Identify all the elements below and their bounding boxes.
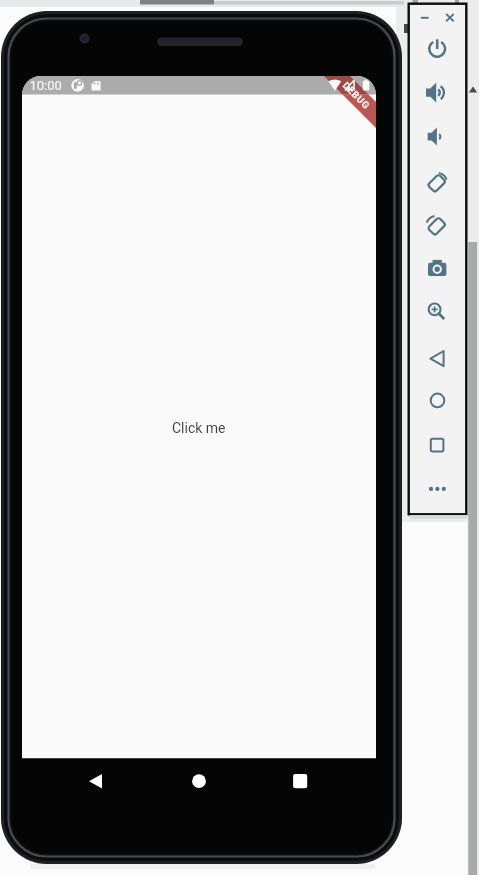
button[interactable] bbox=[423, 344, 451, 372]
button[interactable] bbox=[423, 211, 451, 239]
button[interactable] bbox=[75, 763, 115, 799]
button[interactable] bbox=[423, 122, 451, 150]
button[interactable] bbox=[415, 10, 430, 25]
button[interactable] bbox=[280, 763, 320, 799]
button[interactable] bbox=[423, 475, 451, 503]
button[interactable] bbox=[423, 297, 451, 325]
button[interactable] bbox=[423, 167, 451, 195]
button[interactable] bbox=[423, 431, 451, 459]
button[interactable] bbox=[423, 34, 451, 62]
button[interactable] bbox=[443, 10, 458, 25]
button[interactable] bbox=[423, 254, 451, 282]
button[interactable] bbox=[165, 410, 235, 446]
button[interactable] bbox=[179, 763, 219, 799]
button[interactable] bbox=[423, 386, 451, 414]
button[interactable] bbox=[423, 78, 451, 106]
